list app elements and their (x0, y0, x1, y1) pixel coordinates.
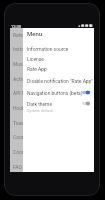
button[interactable]: Coordin (13, 148, 24, 155)
staticText: Coordin (13, 134, 24, 140)
button[interactable]: Hooks (13, 104, 24, 111)
button[interactable]: API Br (13, 89, 24, 96)
staticText: Rate App (27, 66, 47, 72)
button[interactable]: Rate App (23, 63, 94, 74)
staticText: Coordin (13, 149, 24, 155)
staticText: 12:30 (11, 24, 21, 29)
staticText: Navigation buttons (beta) (27, 90, 83, 96)
button[interactable]: License (23, 53, 94, 64)
staticText: Information source (27, 46, 69, 52)
staticText: Hooks (13, 105, 24, 111)
button[interactable]: FAQ (13, 163, 24, 170)
staticText: Dark theme (27, 101, 52, 107)
button[interactable]: Toasts (13, 119, 24, 126)
staticText: FAQ (13, 164, 22, 170)
staticText: Music (13, 61, 24, 67)
staticText: Rate App (13, 32, 24, 38)
button[interactable]: Disable notification "Rate App" (23, 75, 94, 86)
staticText: Toasts (13, 120, 24, 126)
staticText: Install (13, 46, 24, 52)
staticText: System default (27, 108, 53, 113)
other: Status icons (78, 23, 93, 28)
staticText: API Br (13, 90, 24, 96)
staticText: Active (13, 76, 24, 82)
button[interactable]: Menu (27, 30, 43, 37)
button[interactable]: Dark theme (23, 98, 94, 109)
button[interactable]: Navigation buttons (beta) (23, 87, 94, 98)
button[interactable]: Music (13, 60, 24, 67)
staticText: Disable notification "Rate App" (27, 78, 93, 84)
button[interactable]: Coordin (13, 133, 24, 140)
staticText: License (27, 56, 44, 62)
button[interactable]: Information source (23, 43, 94, 54)
staticText: Menu (27, 30, 43, 37)
button[interactable]: Active (13, 75, 24, 82)
button[interactable]: Rate App (13, 31, 24, 38)
button[interactable]: Install (13, 45, 24, 52)
